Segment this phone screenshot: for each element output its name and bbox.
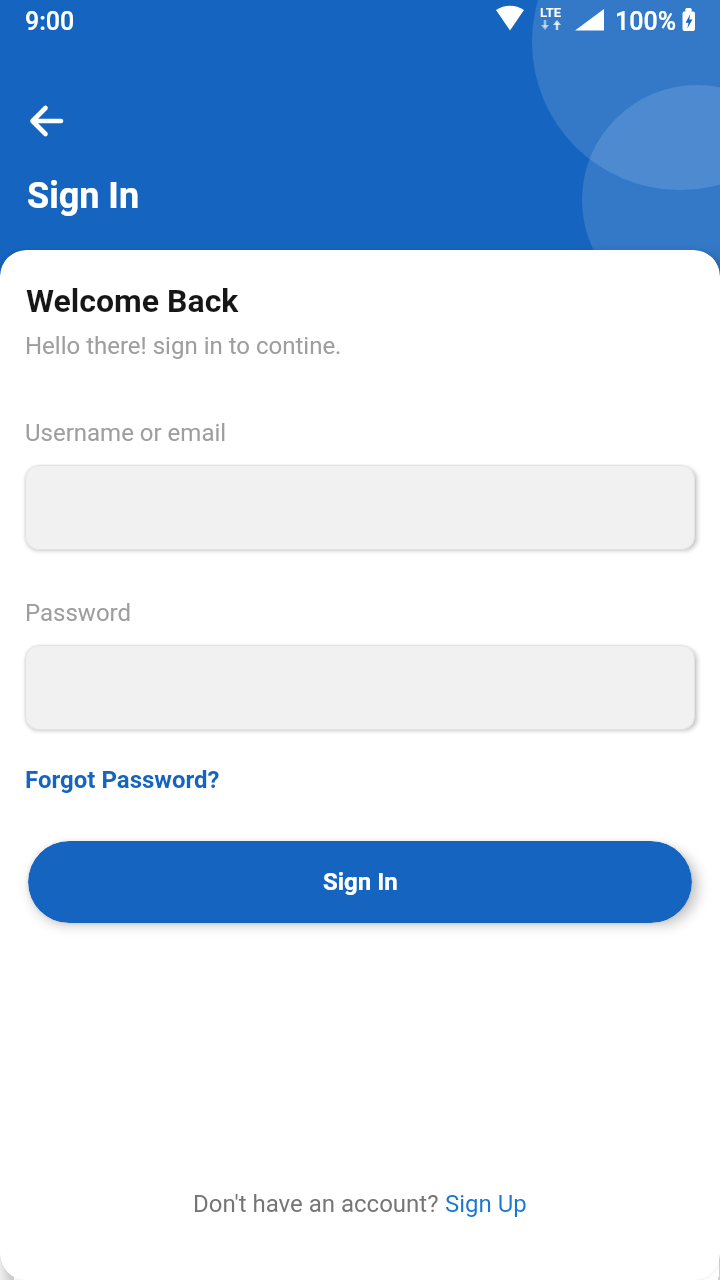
staticText: 9:00 bbox=[25, 7, 75, 36]
staticText: Password bbox=[25, 599, 132, 627]
staticText: Sign In bbox=[27, 175, 140, 217]
staticText: Username or email bbox=[25, 419, 227, 447]
staticText: Don't have an account? bbox=[193, 1190, 445, 1218]
button[interactable]: Forgot Password? bbox=[25, 760, 220, 788]
staticText: LTE bbox=[540, 5, 561, 20]
staticText: Sign Up bbox=[445, 1190, 527, 1218]
staticText: 100% bbox=[615, 7, 676, 36]
staticText: Hello there! sign in to contine. bbox=[25, 332, 342, 360]
button[interactable]: Sign In bbox=[28, 841, 692, 923]
button[interactable] bbox=[22, 97, 70, 145]
staticText: Sign In bbox=[323, 868, 398, 896]
button[interactable]: Sign Up bbox=[445, 1190, 527, 1218]
staticText: Forgot Password? bbox=[25, 766, 220, 794]
staticText: Welcome Back bbox=[26, 282, 239, 320]
